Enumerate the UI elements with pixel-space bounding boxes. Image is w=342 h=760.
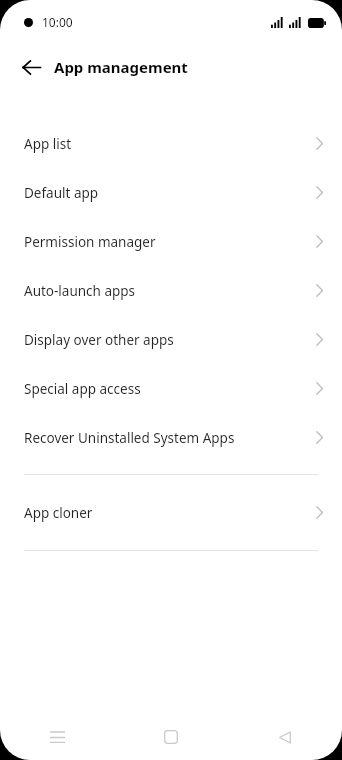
staticText: Recover Uninstalled System Apps [24,429,235,447]
button[interactable]: Recover Uninstalled System Apps [0,413,342,462]
button[interactable]: Back [228,714,342,760]
button[interactable]: Auto-launch apps [0,266,342,315]
staticText: Special app access [24,380,141,398]
button[interactable]: Recent apps [0,714,114,760]
button[interactable]: App list [0,119,342,168]
button[interactable]: App cloner [0,488,342,537]
button[interactable]: Default app [0,168,342,217]
staticText: Auto-launch apps [24,282,136,300]
staticText: Default app [24,184,99,202]
button[interactable]: Back [14,50,48,84]
staticText: App list [24,135,72,153]
staticText: App cloner [24,504,93,522]
staticText: 10:00 [42,14,73,30]
button[interactable]: Special app access [0,364,342,413]
button[interactable]: Home [114,714,228,760]
staticText: Permission manager [24,233,156,251]
staticText: Display over other apps [24,331,174,349]
button[interactable]: Display over other apps [0,315,342,364]
button[interactable]: Permission manager [0,217,342,266]
staticText: App management [54,57,188,77]
